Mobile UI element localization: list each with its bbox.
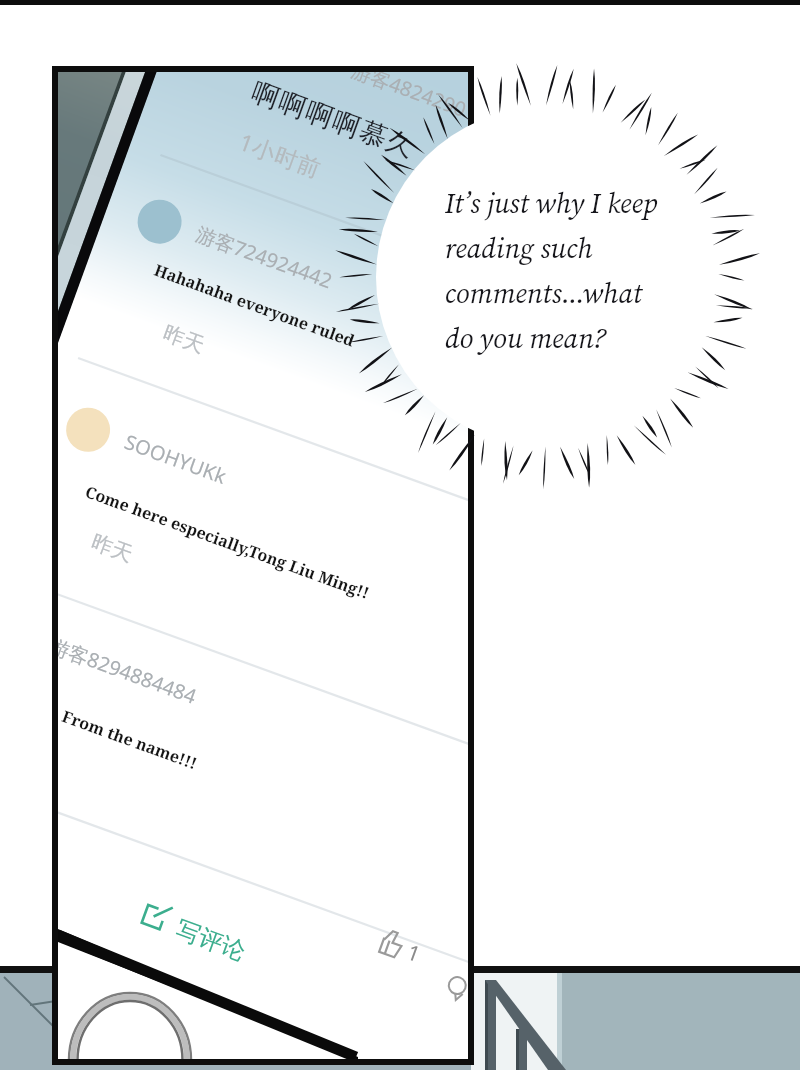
button[interactable]: Comment by 游客8294884484: From the name!!… <box>56 600 470 790</box>
button[interactable]: Comment by 游客724924442: Hahahaha everyon… <box>56 180 470 360</box>
button[interactable]: 写评论 Write a comment <box>128 884 278 970</box>
button[interactable]: Comments <box>442 968 476 1002</box>
button[interactable]: Comment by SOOHYUKk: Come here especiall… <box>56 390 470 590</box>
button[interactable]: Like, 1 <box>378 918 434 960</box>
